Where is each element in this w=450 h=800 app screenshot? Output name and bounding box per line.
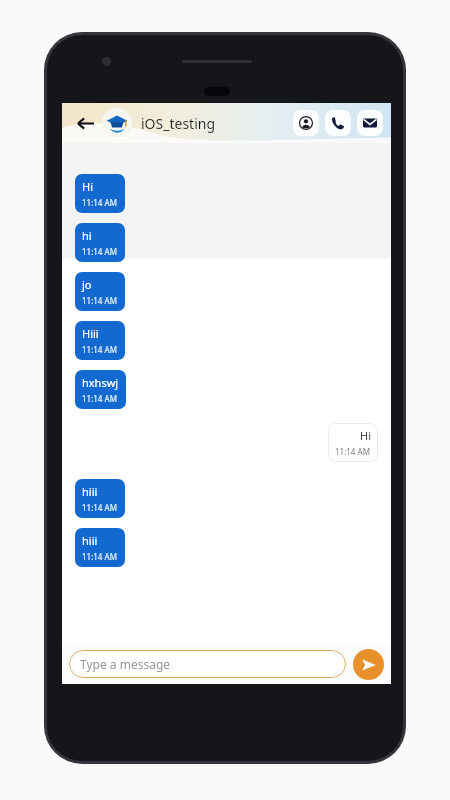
staticText: 11:14 AM [82,393,118,404]
staticText: Type a message [80,656,171,672]
staticText: Hi [82,179,93,194]
staticText: 11:14 AM [82,551,118,562]
button[interactable]: Send [353,649,384,680]
staticText: Hi [360,428,371,443]
staticText: iOS_testing [141,114,216,133]
button[interactable]: Email [357,110,383,136]
button[interactable]: Hi [328,423,378,462]
button[interactable]: Type a message [69,650,346,678]
button[interactable]: Contact info [293,110,319,136]
staticText: 11:14 AM [82,344,118,355]
button[interactable]: Profile picture [102,108,132,138]
button[interactable]: Call [325,110,351,136]
staticText: jo [82,277,92,292]
staticText: 11:14 AM [82,246,118,257]
button[interactable]: jo [75,272,125,311]
button[interactable]: hiii [75,528,125,567]
staticText: hi [82,228,92,243]
staticText: Hiii [82,326,99,341]
button[interactable]: hxhswj [75,370,126,409]
staticText: hiii [82,484,98,499]
staticText: 11:14 AM [82,295,118,306]
button[interactable]: Hiii [75,321,125,360]
staticText: hxhswj [82,375,119,390]
button[interactable]: hi [75,223,125,262]
staticText: 11:14 AM [82,197,118,208]
staticText: 11:14 AM [82,502,118,513]
button[interactable]: hiii [75,479,125,518]
staticText: 11:14 AM [335,446,371,457]
staticText: hiii [82,533,98,548]
button[interactable]: Hi [75,174,125,213]
button[interactable]: Back [70,108,100,138]
